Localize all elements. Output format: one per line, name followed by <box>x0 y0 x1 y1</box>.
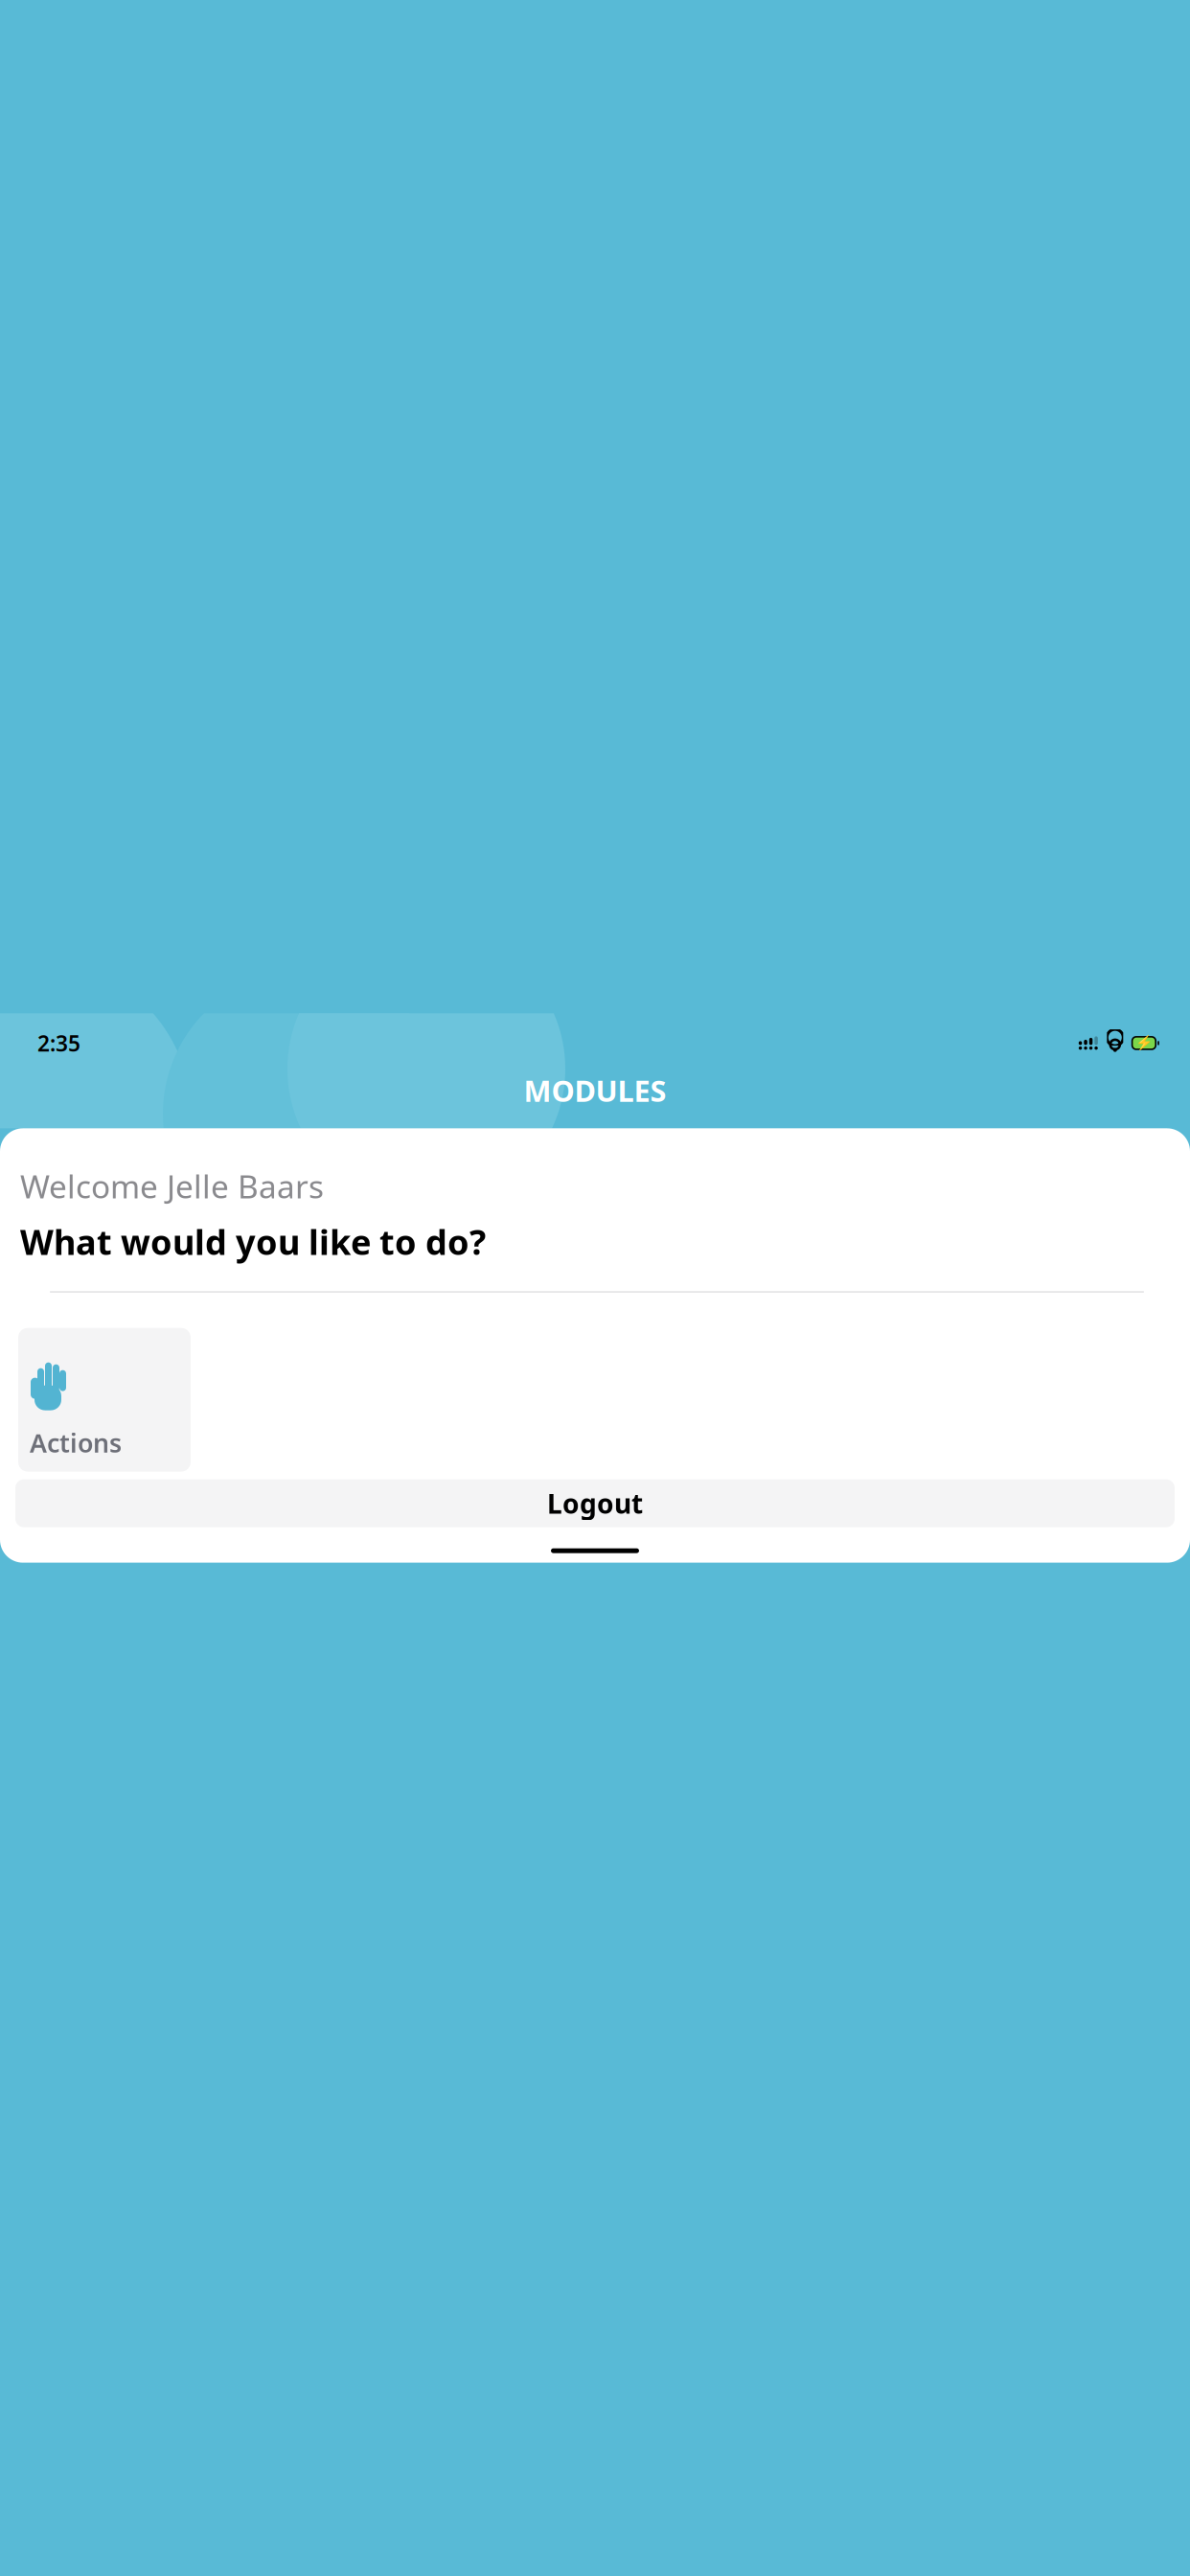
button[interactable]: Actions <box>18 1328 191 1472</box>
button[interactable]: Logout <box>15 1479 1175 1527</box>
staticText: Actions <box>30 1426 122 1460</box>
staticText: 2:35 <box>37 1029 80 1058</box>
staticText: What would you like to do? <box>20 1219 486 1264</box>
staticText: Logout <box>547 1485 643 1521</box>
staticText: Welcome Jelle Baars <box>20 1165 324 1207</box>
staticText: MODULES <box>524 1071 666 1110</box>
staticText: ⚡ <box>1135 1035 1153 1051</box>
